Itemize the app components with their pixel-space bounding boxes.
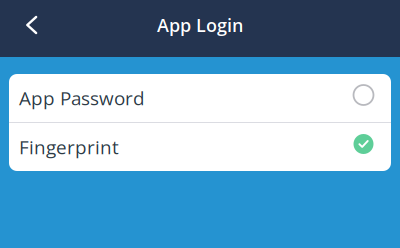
staticText: App Password	[19, 85, 145, 111]
button[interactable]: Selected	[9, 123, 391, 171]
navigationBar: App Login	[0, 0, 400, 57]
button[interactable]: Not selected	[9, 74, 391, 122]
staticText: App Login	[157, 13, 243, 37]
button[interactable]: Back	[12, 5, 52, 45]
staticText: Fingerprint	[19, 134, 119, 160]
